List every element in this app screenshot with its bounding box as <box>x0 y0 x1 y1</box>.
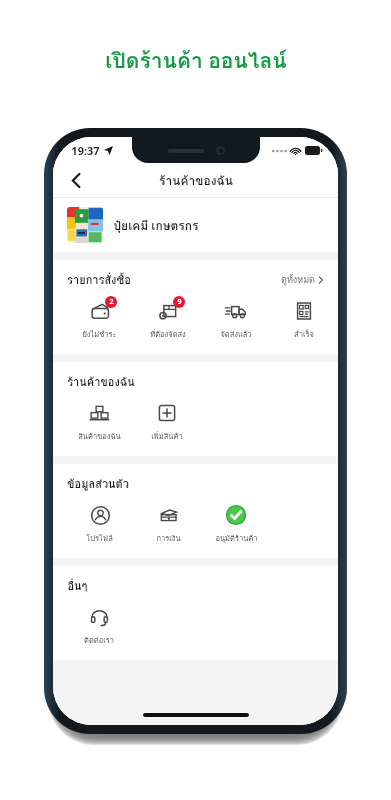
staticText: ข้อมูลส่วนตัว <box>67 475 129 492</box>
staticText: ร้านค้าของฉัน <box>159 171 233 190</box>
button[interactable]: สำเร็จ <box>270 296 338 343</box>
button[interactable]: เพิ่มสินค้า <box>133 398 201 445</box>
staticText: ที่ต้องจัดส่ง <box>150 328 186 340</box>
staticText: ร้านค้าของฉัน <box>67 373 135 390</box>
staticText: สินค้าของฉัน <box>78 430 121 442</box>
button[interactable]: การเงิน <box>134 500 202 547</box>
staticText: 2 <box>109 297 114 307</box>
staticText: ยังไม่ชำระ <box>82 328 117 340</box>
staticText: 19:37 <box>71 143 100 158</box>
staticText: การเงิน <box>156 532 181 544</box>
button[interactable]: สินค้าของฉัน <box>65 398 133 445</box>
button[interactable]: อนุมัติร้านค้า <box>202 500 270 547</box>
button[interactable]: 9 <box>134 296 202 343</box>
staticText: ดูทั้งหมด <box>281 273 315 287</box>
button[interactable]: ปุ๋ยเคมี เกษตรกร <box>53 198 338 252</box>
button[interactable]: ดูทั้งหมด <box>281 273 324 287</box>
button[interactable]: Back <box>61 165 91 195</box>
staticText: อนุมัติร้านค้า <box>215 532 258 544</box>
staticText: อื่นๆ <box>67 577 88 594</box>
staticText: รายการสั่งซื้อ <box>67 271 131 288</box>
button[interactable]: ติดต่อเรา <box>65 602 133 649</box>
button[interactable]: 2 <box>65 296 134 343</box>
staticText: เพิ่มสินค้า <box>151 430 183 442</box>
staticText: เปิดร้านค้า ออนไลน์ <box>105 44 287 77</box>
staticText: จัดส่งแล้ว <box>220 328 252 340</box>
button[interactable]: โปรไฟล์ <box>65 500 134 547</box>
staticText: สำเร็จ <box>294 328 314 340</box>
staticText: ปุ๋ยเคมี เกษตรกร <box>113 216 199 235</box>
button[interactable]: จัดส่งแล้ว <box>202 296 270 343</box>
staticText: 9 <box>177 297 182 307</box>
staticText: โปรไฟล์ <box>86 532 113 544</box>
staticText: ติดต่อเรา <box>84 634 114 646</box>
